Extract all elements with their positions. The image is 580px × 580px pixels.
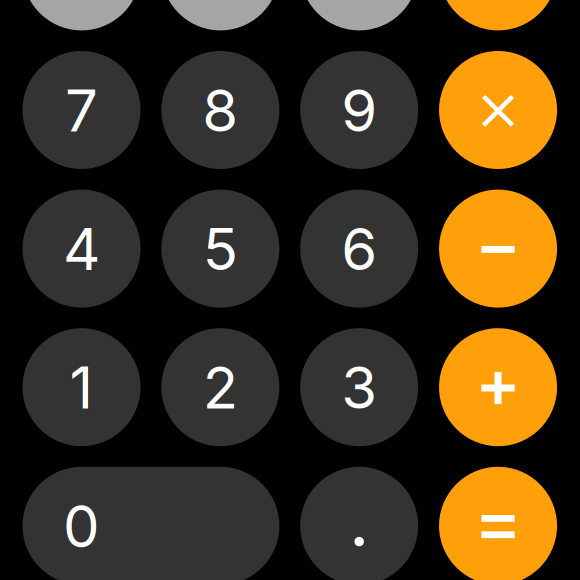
- button[interactable]: Equals: [439, 467, 557, 580]
- button[interactable]: 2: [161, 328, 279, 446]
- staticText: 3: [341, 352, 377, 423]
- button[interactable]: Divide: [439, 0, 557, 30]
- button[interactable]: 9: [300, 51, 418, 169]
- staticText: 7: [65, 75, 98, 145]
- staticText: 1: [69, 352, 93, 423]
- button[interactable]: 3: [300, 328, 418, 446]
- button[interactable]: Multiply: [439, 51, 557, 169]
- button[interactable]: %: [300, 0, 418, 30]
- staticText: 9: [341, 75, 377, 145]
- button[interactable]: 4: [22, 190, 140, 308]
- button[interactable]: Minus: [439, 190, 557, 308]
- button[interactable]: 8: [161, 51, 279, 169]
- staticText: 2: [203, 352, 238, 423]
- staticText: 4: [63, 214, 100, 284]
- button[interactable]: 0: [22, 467, 279, 580]
- button[interactable]: 7: [22, 51, 140, 169]
- staticText: 5: [203, 214, 238, 284]
- staticText: 8: [202, 75, 238, 145]
- button[interactable]: Decimal point: [300, 467, 418, 580]
- button[interactable]: 5: [161, 190, 279, 308]
- button[interactable]: Plus: [439, 328, 557, 446]
- button[interactable]: 1: [22, 328, 140, 446]
- button[interactable]: 6: [300, 190, 418, 308]
- button[interactable]: AC: [22, 0, 140, 30]
- staticText: 0: [63, 491, 100, 561]
- staticText: 6: [341, 214, 377, 284]
- button[interactable]: ±: [161, 0, 279, 30]
